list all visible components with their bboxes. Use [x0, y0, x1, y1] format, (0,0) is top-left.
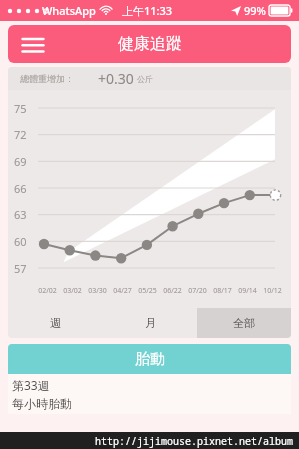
staticText: 每小時胎動 [12, 396, 72, 411]
staticText: 72 [14, 127, 27, 142]
staticText: 09/14 [238, 286, 257, 296]
staticText: 公斤 [137, 74, 153, 84]
staticText: +0.30 [98, 69, 134, 88]
button[interactable]: 全部 [197, 308, 291, 338]
staticText: 總體重增加： [20, 73, 74, 84]
staticText: 第33週 [12, 377, 50, 393]
staticText: 胎動 [135, 350, 165, 369]
button[interactable]: Menu [18, 31, 48, 57]
staticText: 03/30 [88, 286, 107, 296]
staticText: 10/12 [263, 286, 282, 296]
staticText: 06/22 [163, 286, 182, 296]
staticText: 04/27 [113, 286, 132, 296]
staticText: 02/02 [38, 286, 57, 296]
staticText: 66 [14, 181, 27, 196]
staticText: WhatsApp [42, 3, 96, 18]
button[interactable]: 胎動 [8, 344, 291, 374]
button[interactable]: 週 [8, 308, 103, 338]
staticText: 週 [50, 316, 61, 330]
staticText: 03/02 [63, 286, 82, 296]
staticText: 57 [14, 261, 27, 276]
staticText: 健康追蹤 [118, 34, 182, 54]
staticText: 07/20 [188, 286, 207, 296]
button[interactable]: 月 [103, 308, 197, 338]
staticText: 上午11:33 [122, 3, 173, 18]
staticText: 60 [14, 234, 27, 249]
staticText: 月 [145, 316, 156, 330]
staticText: 08/17 [213, 286, 232, 296]
staticText: 69 [14, 154, 27, 169]
staticText: 63 [14, 207, 27, 222]
staticText: 75 [14, 101, 27, 116]
staticText: 99% [244, 3, 266, 18]
staticText: http://jijimouse.pixnet.net/album [95, 434, 293, 448]
staticText: 全部 [233, 316, 255, 330]
staticText: 05/25 [138, 286, 157, 296]
